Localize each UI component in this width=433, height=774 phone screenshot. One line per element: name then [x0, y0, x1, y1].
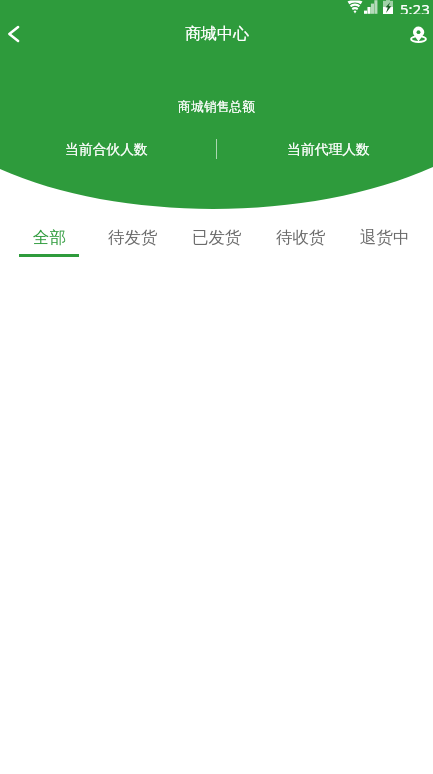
staticText: 全部 [33, 227, 66, 248]
staticText: 商城中心 [185, 24, 249, 44]
staticText: 待收货 [276, 227, 326, 248]
staticText: 5:23 [400, 0, 430, 14]
button[interactable]: Location [403, 10, 433, 58]
button[interactable]: 全部 [7, 222, 91, 262]
staticText: 退货中 [360, 227, 410, 248]
staticText: 商城销售总额 [0, 99, 433, 115]
staticText: 当前代理人数 [287, 141, 370, 158]
button[interactable]: 退货中 [343, 222, 427, 262]
button[interactable]: 待发货 [91, 222, 175, 262]
staticText: 待发货 [108, 227, 158, 248]
button[interactable]: Back [0, 10, 26, 58]
button[interactable]: 已发货 [175, 222, 259, 262]
staticText: 当前合伙人数 [65, 141, 148, 158]
button[interactable]: 待收货 [259, 222, 343, 262]
staticText: 已发货 [192, 227, 242, 248]
